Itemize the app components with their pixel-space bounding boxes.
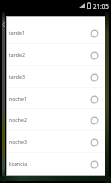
- other: Select option: [90, 115, 99, 124]
- staticText: 21:05: [93, 2, 109, 10]
- other: Select option: [90, 50, 99, 59]
- button[interactable]: noche2: [7, 108, 105, 130]
- other: Back: [2, 22, 5, 27]
- button[interactable]: noche1: [7, 87, 105, 109]
- staticText: noche1: [9, 95, 90, 102]
- other: Select option: [90, 28, 99, 37]
- staticText: noche3: [9, 138, 90, 145]
- staticText: licencia: [9, 160, 90, 167]
- button[interactable]: licencia: [7, 152, 105, 174]
- staticText: noche2: [9, 116, 90, 123]
- staticText: tarde1: [9, 29, 90, 36]
- button[interactable]: tarde2: [7, 43, 105, 65]
- other: Select option: [90, 159, 99, 168]
- staticText: tarde3: [9, 73, 90, 80]
- button[interactable]: noche3: [7, 130, 105, 152]
- staticText: tarde2: [9, 51, 90, 58]
- other: Select option: [90, 137, 99, 146]
- button[interactable]: tarde1: [7, 21, 105, 43]
- other: Select option: [90, 72, 99, 81]
- button[interactable]: tarde3: [7, 65, 105, 87]
- other: Select option: [90, 94, 99, 103]
